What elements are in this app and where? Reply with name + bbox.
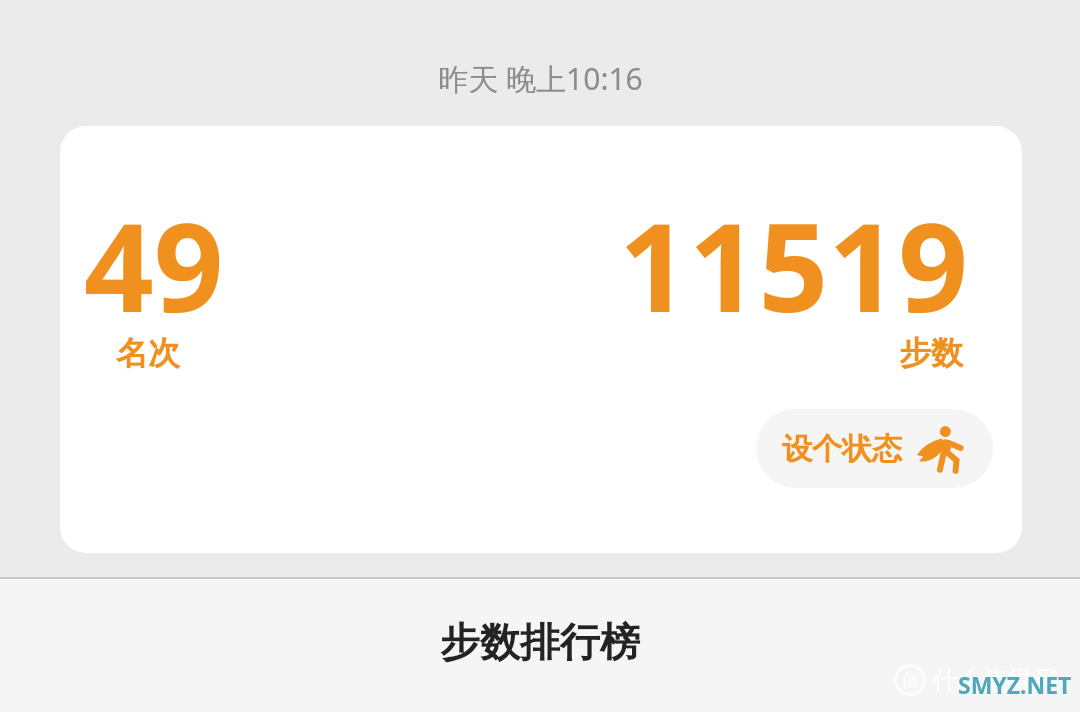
staticText: 步数 bbox=[899, 333, 963, 373]
button[interactable]: 设个状态 bbox=[756, 409, 993, 488]
staticText: 名次 bbox=[116, 333, 180, 373]
staticText: 值 bbox=[902, 670, 919, 691]
staticText: 设个状态 bbox=[782, 430, 902, 468]
staticText: 11519 bbox=[619, 182, 968, 348]
other: 设个状态 bbox=[916, 423, 968, 475]
staticText: 昨天 晚上10:16 bbox=[438, 58, 643, 99]
staticText: 什么值得买 bbox=[932, 665, 1057, 696]
button[interactable]: 49 bbox=[60, 126, 1022, 553]
staticText: SMYZ.NET bbox=[958, 669, 1072, 700]
staticText: 步数排行榜 bbox=[440, 617, 640, 667]
staticText: 49 bbox=[84, 182, 224, 348]
